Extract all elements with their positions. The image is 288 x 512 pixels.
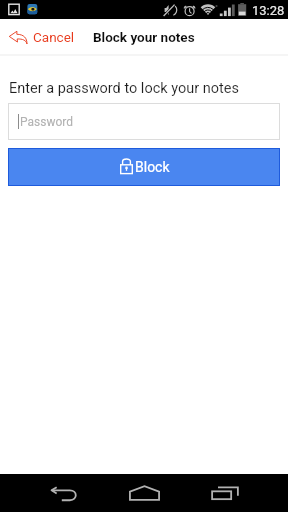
- staticText: Block your notes: [93, 29, 195, 45]
- button[interactable]: Recent apps: [201, 474, 249, 512]
- staticText: Block: [135, 159, 170, 175]
- staticText: 13:28: [252, 3, 285, 18]
- staticText: Enter a password to lock your notes: [9, 80, 239, 97]
- staticText: Cancel: [33, 29, 75, 45]
- button[interactable]: Block: [8, 148, 280, 186]
- button[interactable]: Cancel: [4, 19, 83, 54]
- button[interactable]: Home: [120, 474, 168, 512]
- button[interactable]: Back: [40, 474, 88, 512]
- staticText: Password: [20, 115, 74, 129]
- button[interactable]: Password: [8, 103, 280, 140]
